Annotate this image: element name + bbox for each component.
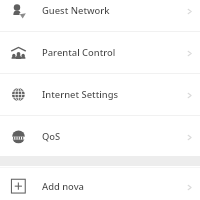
staticText: Guest Network [42, 4, 110, 17]
staticText: Add nova [42, 180, 84, 193]
button[interactable]: Guest Network [0, 0, 200, 32]
other: Open Guest Network [185, 7, 194, 16]
staticText: QoS [42, 130, 61, 143]
other: Open Add nova [185, 183, 194, 192]
button[interactable]: Parental Control [0, 32, 200, 74]
button[interactable]: Add nova [0, 166, 200, 200]
staticText: Internet Settings [42, 88, 119, 101]
button[interactable]: Internet Settings [0, 74, 200, 116]
button[interactable]: QoS [0, 116, 200, 158]
other: Open Internet Settings [185, 91, 194, 100]
other: Open QoS [185, 133, 194, 142]
other: Open Parental Control [185, 49, 194, 58]
staticText: Parental Control [42, 46, 116, 59]
